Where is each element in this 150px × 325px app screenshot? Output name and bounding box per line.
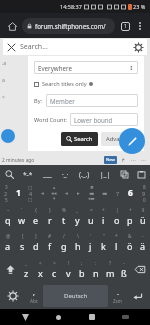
staticText: ◂▬ — [88, 196, 95, 201]
button[interactable]: : — [89, 256, 103, 283]
staticText: - — [123, 260, 125, 267]
button[interactable]: _ — [71, 203, 84, 229]
button[interactable]: □ — [24, 183, 36, 203]
button[interactable]: + — [97, 203, 110, 229]
button[interactable]: ' — [84, 229, 97, 256]
button[interactable]: - — [136, 229, 149, 256]
staticText: v — [66, 267, 71, 279]
button[interactable]: " — [97, 229, 110, 256]
button[interactable]: = — [84, 203, 97, 229]
staticText: x — [38, 267, 43, 279]
button[interactable]: _ — [19, 256, 33, 283]
staticText: Deutsch — [64, 292, 88, 300]
button[interactable]: [ — [15, 229, 29, 256]
staticText: □ — [28, 185, 33, 190]
button[interactable]: # — [43, 229, 57, 256]
staticText: ·_· — [62, 170, 69, 179]
button[interactable]: < — [33, 256, 47, 283]
button[interactable]: forum.shiftphones.com/thread — [22, 18, 115, 34]
button[interactable]: - — [117, 256, 131, 283]
button[interactable]: Keyboard — [117, 309, 133, 325]
button[interactable]: & — [123, 229, 136, 256]
staticText: 3 — [5, 184, 8, 190]
button[interactable]: Deutsch — [43, 285, 108, 307]
button[interactable]: Settings — [2, 285, 24, 307]
button[interactable]: | — [110, 203, 123, 229]
button[interactable]: ▬ — [98, 183, 111, 203]
button[interactable]: Search titles only — [34, 80, 93, 88]
button[interactable]: 1 — [16, 187, 21, 199]
button[interactable]: Enter — [127, 285, 148, 307]
staticText: ▴ — [53, 185, 56, 190]
button[interactable]: Home — [50, 309, 66, 325]
staticText: @ — [6, 233, 11, 240]
staticText: Search... — [20, 42, 48, 52]
button[interactable]: *-* — [21, 167, 35, 181]
button[interactable]: Lower bound — [70, 113, 138, 126]
button[interactable]: / — [57, 229, 71, 256]
button[interactable]: Member — [46, 94, 138, 107]
button[interactable]: \ — [71, 229, 84, 256]
button[interactable]: |_| — [98, 167, 113, 181]
button[interactable]: ___ — [41, 167, 54, 181]
button[interactable]: ◂ — [36, 183, 48, 203]
button[interactable]: % — [57, 203, 71, 229]
button[interactable]: ? — [103, 256, 117, 283]
button[interactable]: ·_· — [60, 167, 71, 181]
staticText: (._.) — [79, 170, 90, 179]
button[interactable]: Everywhere — [34, 61, 138, 74]
button[interactable]: ▸ — [72, 183, 85, 203]
button[interactable]: Shift — [1, 256, 19, 283]
staticText: ▬ — [89, 190, 95, 196]
button[interactable]: More options — [134, 20, 146, 32]
button[interactable]: Search settings — [133, 42, 143, 52]
button[interactable]: (._.) — [77, 167, 92, 181]
button[interactable]: ◂ — [60, 183, 72, 203]
button[interactable]: Backspace — [131, 256, 149, 283]
button[interactable]: ~ — [1, 203, 15, 229]
button[interactable]: ▴ — [48, 183, 60, 203]
button[interactable]: Home — [4, 18, 20, 34]
staticText: a — [2, 77, 5, 84]
button[interactable]: ` — [15, 203, 29, 229]
button[interactable]: , — [24, 285, 43, 307]
button[interactable]: 7 — [111, 183, 124, 203]
button[interactable]: Search — [3, 168, 15, 180]
button[interactable]: Compose — [119, 128, 145, 154]
button[interactable]: ✖ — [85, 183, 98, 203]
button[interactable]: @ — [1, 229, 15, 256]
staticText: i — [102, 214, 105, 226]
button[interactable]: Tabs — [118, 19, 132, 33]
staticText: | — [116, 207, 119, 214]
staticText: u — [88, 214, 94, 226]
button[interactable]: 8 — [137, 183, 150, 203]
staticText: 2 — [4, 190, 8, 197]
button[interactable]: Search — [61, 132, 98, 146]
staticText: 1 — [124, 23, 127, 30]
button[interactable]: Recents — [84, 309, 100, 325]
button[interactable]: 6 — [128, 187, 133, 199]
button[interactable]: Close search — [7, 43, 16, 52]
button[interactable]: > — [47, 256, 61, 283]
button[interactable]: { — [29, 203, 43, 229]
button[interactable]: Copy — [119, 169, 130, 180]
button[interactable]: + — [123, 203, 136, 229]
button[interactable]: ; — [75, 256, 89, 283]
staticText: l — [115, 240, 118, 252]
button[interactable]: * — [110, 229, 123, 256]
staticText: ◂ — [65, 190, 68, 196]
button[interactable]: 3 — [0, 183, 12, 203]
button[interactable]: } — [43, 203, 57, 229]
staticText: o — [114, 214, 120, 226]
staticText: > — [53, 260, 56, 267]
staticText: □ — [28, 197, 33, 202]
button[interactable]: Advanced — [101, 132, 138, 146]
staticText: 7 — [116, 190, 120, 197]
button[interactable]: ! — [61, 256, 75, 283]
button[interactable]: Back — [17, 309, 33, 325]
button[interactable]: ] — [29, 229, 43, 256]
button[interactable]: § — [136, 203, 149, 229]
button[interactable]: . — [108, 285, 127, 307]
staticText: p — [127, 214, 133, 226]
button[interactable]: Paste — [136, 169, 147, 180]
